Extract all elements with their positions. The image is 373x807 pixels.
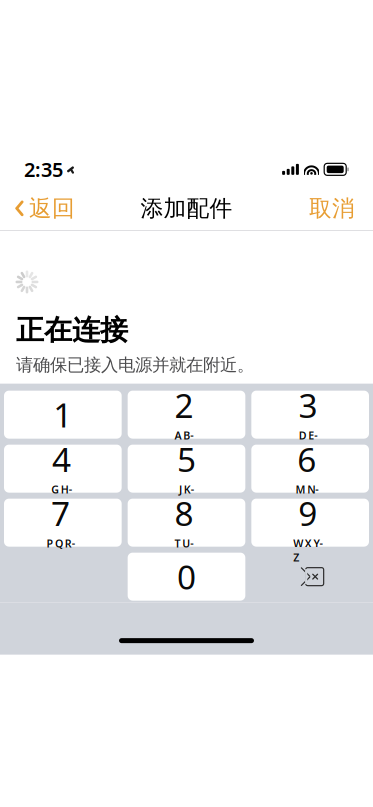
staticText: 1 xyxy=(53,392,72,437)
button[interactable]: 8 xyxy=(128,499,245,547)
staticText: WXYZ xyxy=(293,536,322,564)
staticText: 添加配件 xyxy=(140,194,232,222)
button[interactable]: 5 xyxy=(128,445,245,493)
button[interactable]: 7 xyxy=(4,499,122,547)
button[interactable]: 3 xyxy=(251,391,369,439)
staticText: 2:35 xyxy=(24,156,63,183)
staticText: 正在连接 xyxy=(16,313,128,347)
staticText: TUV xyxy=(175,536,193,564)
staticText: 0 xyxy=(177,554,196,599)
staticText: GHI xyxy=(51,482,72,510)
staticText: 5 xyxy=(177,437,196,481)
button[interactable]: 6 xyxy=(251,445,369,493)
staticText: PQRS xyxy=(46,536,75,564)
button[interactable]: 取消 xyxy=(295,186,369,230)
staticText: 7 xyxy=(51,491,70,535)
staticText: 3 xyxy=(299,383,318,427)
button[interactable]: 0 xyxy=(128,553,245,601)
button[interactable]: 返回 xyxy=(4,186,85,230)
staticText: DEF xyxy=(299,428,317,456)
staticText: MNO xyxy=(296,482,318,510)
button[interactable]: 9 xyxy=(251,499,369,547)
button[interactable]: 1 xyxy=(4,391,122,439)
staticText: 8 xyxy=(174,491,193,535)
button[interactable]: 删除 xyxy=(251,553,369,601)
staticText: 4 xyxy=(52,437,71,481)
staticText: 6 xyxy=(297,437,316,481)
button[interactable]: 2 xyxy=(128,391,245,439)
staticText: 9 xyxy=(298,491,317,535)
staticText: 取消 xyxy=(309,194,355,222)
staticText: 请确保已接入电源并就在附近。 xyxy=(16,354,254,376)
staticText: 2 xyxy=(174,383,193,427)
staticText: 返回 xyxy=(29,194,75,222)
staticText: JKL xyxy=(179,482,194,510)
staticText: ABC xyxy=(175,428,193,456)
button[interactable]: 4 xyxy=(4,445,122,493)
